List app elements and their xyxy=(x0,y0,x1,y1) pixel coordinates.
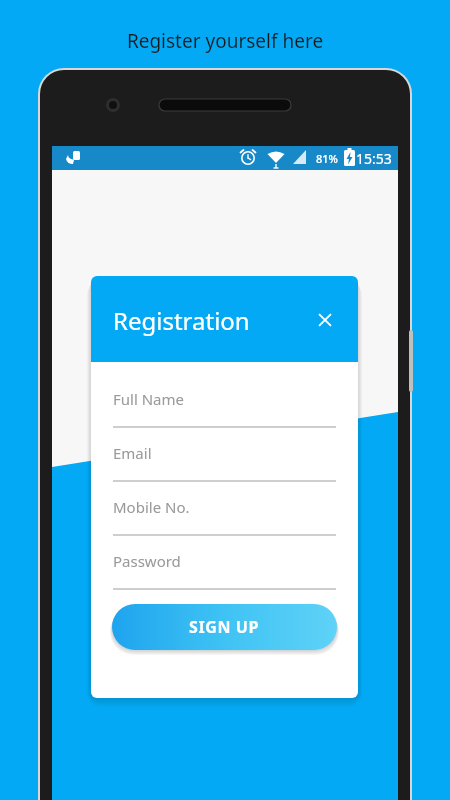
staticText: SIGN UP xyxy=(189,616,260,638)
button[interactable]: SIGN UP xyxy=(112,604,337,650)
button[interactable]: Close xyxy=(308,303,342,337)
staticText: Full Name xyxy=(113,389,184,409)
staticText: 81% xyxy=(316,151,338,166)
staticText: Mobile No. xyxy=(113,497,190,517)
button[interactable]: Full Name xyxy=(113,386,336,428)
button[interactable]: Password xyxy=(113,548,336,590)
staticText: Password xyxy=(113,551,181,571)
button[interactable]: Email xyxy=(113,440,336,482)
staticText: Register yourself here xyxy=(0,28,450,54)
staticText: Registration xyxy=(113,304,250,337)
button[interactable]: Mobile No. xyxy=(113,494,336,536)
staticText: Email xyxy=(113,443,152,463)
staticText: 15:53 xyxy=(356,149,392,168)
